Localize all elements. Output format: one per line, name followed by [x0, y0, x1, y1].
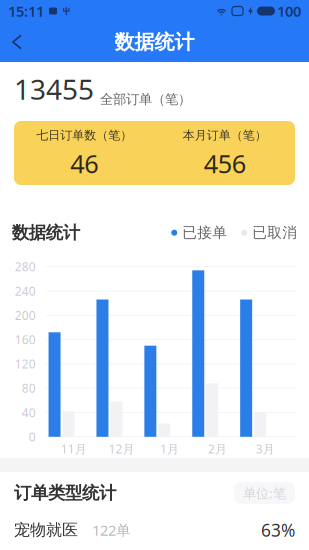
staticText: 80 [22, 380, 36, 396]
staticText: 已取消 [252, 224, 297, 242]
staticText: 已接单 [182, 224, 227, 242]
staticText: 11月 [61, 441, 87, 457]
staticText: 0 [29, 429, 36, 445]
staticText: 单位:笔 [243, 484, 286, 502]
staticText: 160 [15, 332, 36, 347]
staticText: 122单 [92, 520, 131, 540]
staticText: 七日订单数（笔） [36, 128, 132, 142]
staticText: 63% [261, 518, 295, 541]
staticText: 456 [204, 146, 246, 180]
staticText: 240 [15, 283, 36, 299]
staticText: 订单类型统计 [14, 482, 116, 504]
staticText: 本月订单（笔） [183, 128, 267, 142]
staticText: 100 [277, 1, 301, 21]
staticText: 15:11 [8, 1, 44, 21]
staticText: 3月 [256, 441, 275, 457]
staticText: 2月 [208, 441, 227, 457]
staticText: 全部订单（笔） [100, 91, 191, 108]
staticText: 40 [22, 404, 36, 420]
staticText: 数据统计 [12, 222, 80, 243]
staticText: 46 [70, 146, 98, 180]
staticText: 1月 [160, 441, 179, 457]
staticText: 13455 [14, 70, 94, 108]
staticText: 12月 [109, 441, 135, 457]
staticText: 数据统计 [114, 30, 194, 54]
staticText: 280 [15, 259, 36, 275]
staticText: 120 [15, 356, 36, 372]
button[interactable]: Back [0, 24, 30, 60]
staticText: 200 [15, 307, 36, 323]
staticText: 宠物就医 [14, 520, 78, 540]
